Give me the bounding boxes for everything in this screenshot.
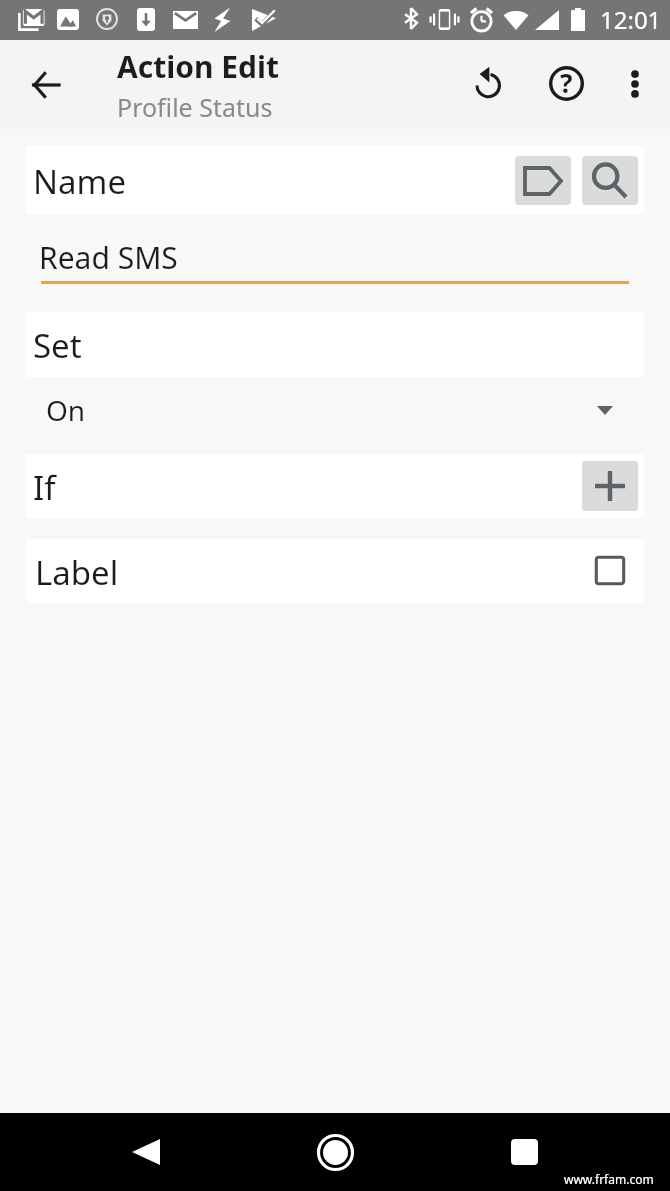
staticText: Read SMS — [39, 237, 178, 278]
button[interactable]: Recents — [492, 1120, 556, 1184]
staticText: If — [33, 465, 56, 510]
button[interactable]: Set — [26, 312, 644, 377]
staticText: ? — [560, 65, 573, 100]
button[interactable]: Read SMS — [0, 214, 670, 312]
button[interactable]: Label checkbox — [595, 556, 625, 585]
button[interactable]: Home — [303, 1120, 367, 1184]
button[interactable]: Help — [540, 57, 592, 109]
button[interactable]: Add — [582, 461, 638, 511]
button[interactable]: Back — [20, 59, 72, 111]
staticText: Name — [33, 159, 127, 204]
staticText: Set — [33, 323, 82, 368]
staticText: www.frfam.com — [564, 1171, 654, 1187]
button[interactable]: Search — [582, 156, 638, 205]
button[interactable]: Undo — [461, 54, 513, 106]
button[interactable]: System back — [114, 1120, 178, 1184]
button[interactable]: Tag — [515, 156, 571, 205]
button[interactable]: Name — [26, 146, 644, 214]
button[interactable]: More options — [611, 60, 659, 108]
button[interactable]: Label — [26, 539, 644, 603]
button[interactable]: On — [0, 377, 670, 454]
staticText: Label — [35, 550, 119, 595]
staticText: Action Edit — [117, 46, 280, 87]
staticText: Profile Status — [117, 90, 273, 124]
staticText: 12:01 — [600, 3, 662, 36]
staticText: On — [46, 391, 86, 429]
button[interactable]: If — [26, 454, 644, 518]
